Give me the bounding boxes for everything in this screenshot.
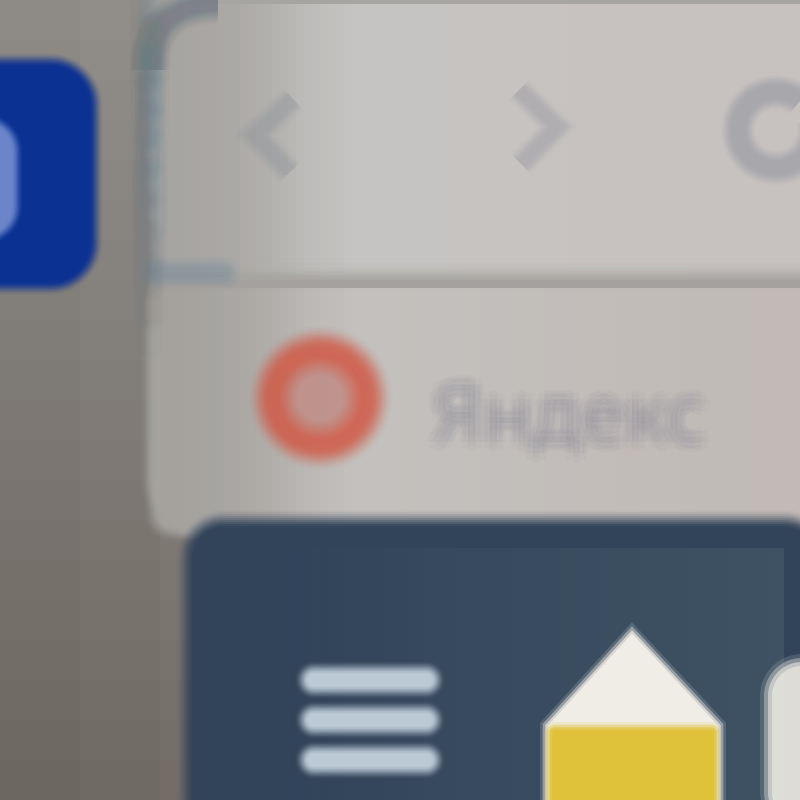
button[interactable]: Яндекс <box>0 0 800 800</box>
staticText: Яндекс <box>441 358 714 464</box>
staticText: Яндекс <box>436 358 709 464</box>
staticText: Яндекс <box>427 358 700 464</box>
staticText: Яндекс <box>423 358 696 464</box>
button[interactable]: Forward <box>0 0 800 800</box>
staticText: Яндекс <box>432 349 705 455</box>
button[interactable]: Back <box>0 0 800 800</box>
staticText: Яндекс <box>432 353 705 460</box>
staticText: Яндекс <box>432 358 705 464</box>
button[interactable]: Reload <box>0 0 800 800</box>
button[interactable]: Menu <box>0 0 150 38</box>
staticText: Яндекс <box>432 367 705 473</box>
staticText: Яндекс <box>438 351 711 458</box>
staticText: Яндекс <box>425 364 698 471</box>
staticText: Яндекс <box>432 362 705 469</box>
staticText: Яндекс <box>438 364 711 471</box>
staticText: Яндекс <box>425 351 698 458</box>
